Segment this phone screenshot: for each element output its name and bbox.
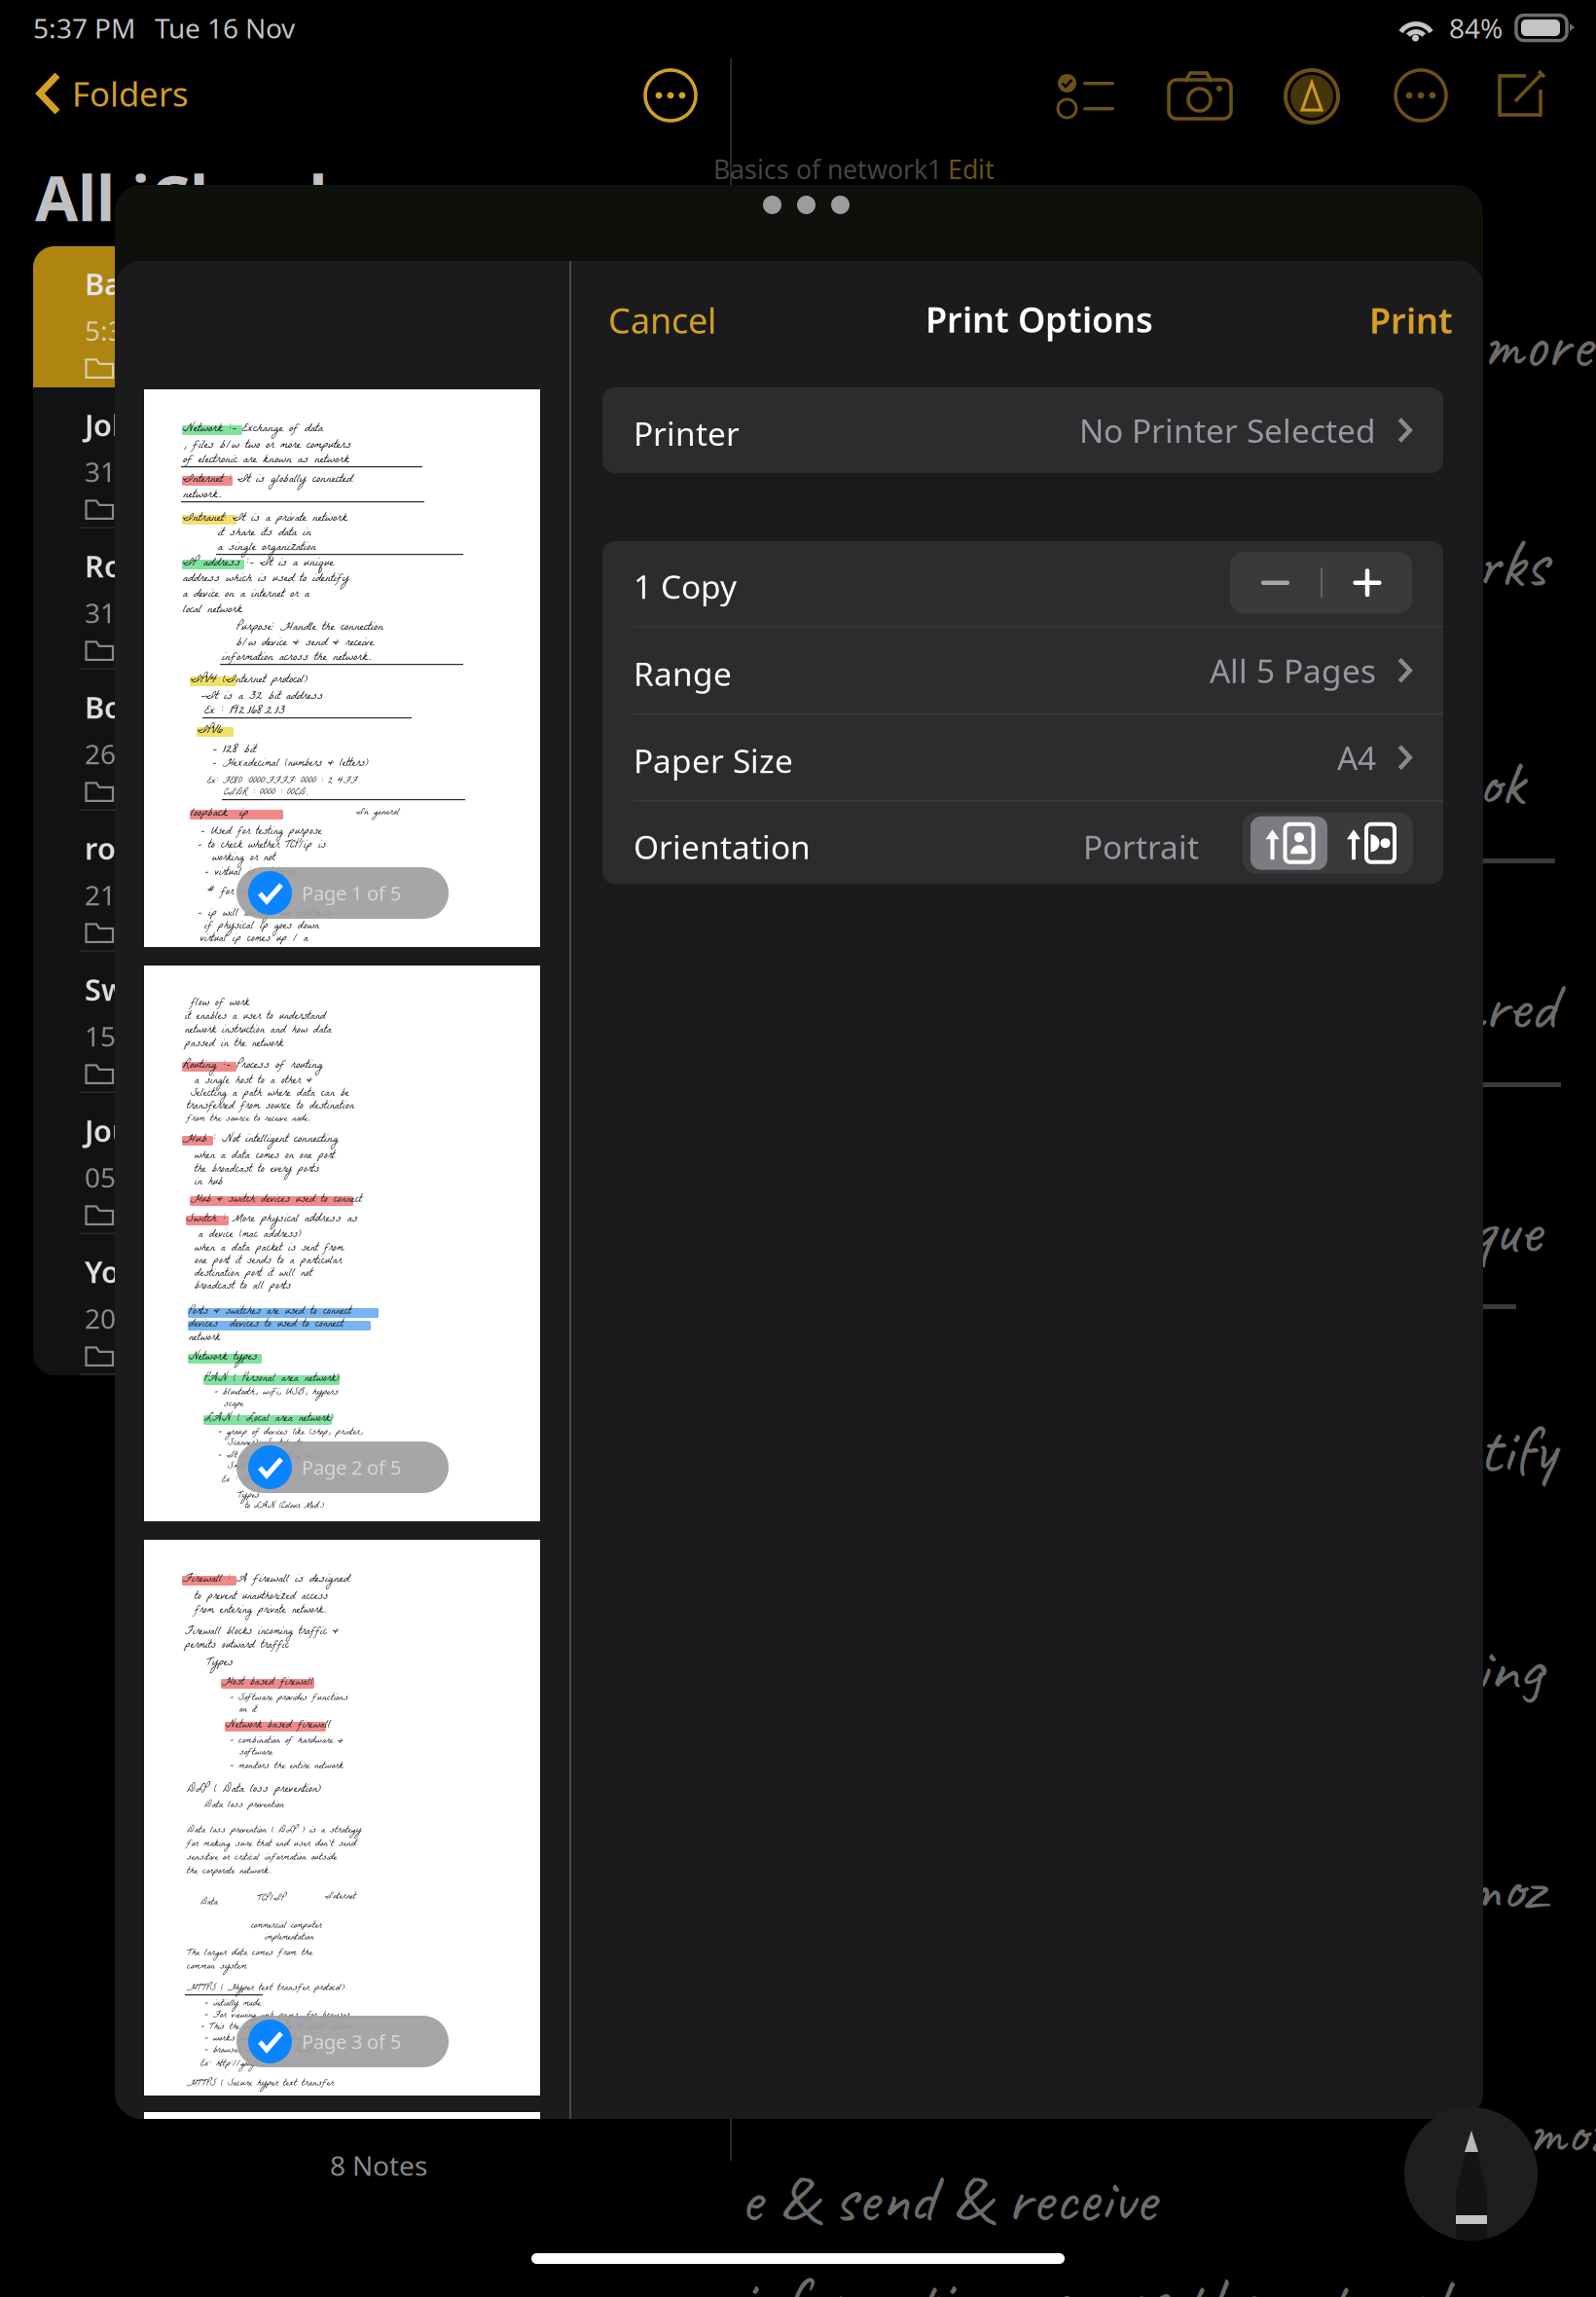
staticText: working or not [200,848,275,868]
staticText: 5:37 PM [33,10,135,46]
staticText: roadmap [85,828,216,868]
staticText: - bluetooth, wifi, USB, hypers [214,1383,339,1402]
staticText: on it [230,1701,257,1720]
staticText: globally connected network & book [749,740,1524,825]
button[interactable]: Landscape orientation [1327,816,1413,870]
staticText: sensitive or critical information outsid… [187,1849,337,1867]
staticText: IP address :- It is a unique [183,552,334,575]
button[interactable]: Decrease number of copies [1230,552,1321,613]
staticText: Ex: http://google.com [200,2056,273,2073]
staticText: Selecting a path where data can be [191,1084,349,1104]
staticText: Tue 16 Nov [155,10,295,46]
button[interactable]: Routine [33,529,675,670]
staticText: IPV4 (Internet protocol) [191,669,308,692]
button[interactable]: Folders [35,71,189,116]
staticText: PAN ( Personal area network) [204,1369,340,1389]
staticText: Print [1369,297,1453,343]
button[interactable]: Paper Size [602,715,1443,800]
staticText: information across the network. [222,647,371,669]
staticText: Job apply [85,405,218,445]
staticText: to moz [1469,2093,1596,2171]
staticText: devices devices to used to connect [189,1315,344,1335]
staticText: information across the network [740,2258,1456,2297]
button[interactable]: More options [1396,70,1446,121]
staticText: 5:37 PM [85,312,187,348]
button[interactable]: Range [602,628,1443,713]
staticText: HTTPS ( Secure hyper text transfer [187,2075,334,2093]
staticText: DLP ( Data loss prevention) [187,1779,321,1801]
staticText: Handle the connection b/w to moz [769,1844,1544,1929]
button[interactable]: Swift [33,952,675,1093]
staticText: - combination of hardware & [230,1732,344,1751]
staticText: 21/10/2021 [85,877,229,913]
staticText: CIDR : 0000 : 00CD. [224,784,308,802]
staticText: - For viewing web pages, for browser [204,2007,350,2024]
staticText: - browser sees details hands. [204,2042,319,2060]
staticText: from the source to receive node. [187,1110,310,1129]
staticText: Types [237,1487,260,1505]
button[interactable]: Journal [33,1093,675,1234]
staticText: flow of work [191,993,249,1014]
staticText: it enables a user to understand [185,1007,326,1027]
staticText: All 5 Pages [1210,649,1376,692]
staticText: A4 [1337,736,1376,779]
staticText: Hub & switch devices used to connect [191,1190,362,1210]
staticText: 26/10/2021 [85,736,229,772]
button[interactable]: Printer [602,387,1443,473]
staticText: a single host to a other & [195,1071,312,1091]
button[interactable]: Cancel [608,297,716,343]
staticText: Hub : Not intelligent connecting [183,1128,339,1151]
button[interactable]: Print [1369,297,1453,343]
staticText: Orientation [634,825,811,868]
staticText: - works on application layer [204,2030,310,2048]
staticText: - group of devices like (shop, printer, [218,1424,363,1441]
button[interactable]: Increase number of copies [1323,552,1412,613]
staticText: a device on a internet or a swing [798,1625,1542,1710]
button[interactable]: Portrait orientation [1251,816,1327,870]
button[interactable]: Edit [948,152,995,186]
staticText: scope [214,1395,243,1414]
staticText: permits outward traffic [185,1636,289,1656]
staticText: 15/10/2021 [85,1018,229,1054]
staticText: Portrait [1083,825,1199,868]
staticText: Internet [325,1888,356,1906]
button[interactable]: roadmap [33,811,675,952]
staticText: Page 1 of 5 [302,880,401,906]
staticText: Data loss prevention ( DLP ) is a strate… [187,1821,361,1840]
button[interactable]: More [645,70,696,121]
staticText: Types [206,1653,234,1674]
button[interactable]: Youtube [33,1234,675,1375]
staticText: address which is used to identify [817,1406,1556,1491]
staticText: common system [187,1958,247,1976]
staticText: 31/10/2021 [85,453,229,489]
staticText: Cancel [608,297,716,343]
staticText: Basics of network1 [713,152,942,186]
staticText: 1 Copy [634,565,737,608]
staticText: IPV6 [198,720,223,742]
button[interactable]: Job apply [33,387,675,529]
staticText: b/w device & send & receive [236,632,374,655]
staticText: implementation [265,1929,313,1947]
staticText: , files b/w two or more computers [183,434,351,457]
button[interactable]: Markup [1284,68,1340,125]
staticText: in a single organization is unique [808,1187,1542,1272]
staticText: the broadcast to every ports [195,1160,319,1180]
staticText: # for loopback ? [207,882,285,903]
button[interactable]: Checklist [1056,70,1116,119]
staticText: Data [200,1894,218,1912]
staticText: Folders [72,71,189,116]
staticText: - monitors the entire network [230,1757,344,1776]
staticText: the corporate network. [187,1862,272,1881]
staticText: Network types [189,1347,258,1369]
staticText: from entering private network. [195,1601,326,1621]
staticText: - Used for testing purpose [200,822,322,842]
button[interactable]: Basics of network1 [33,246,675,387]
button[interactable]: New note [1494,68,1548,123]
staticText: TCP/IP [257,1890,285,1908]
button[interactable]: Insert photo [1168,70,1232,121]
staticText: Data loss prevention [204,1796,284,1815]
button[interactable]: Book list [33,670,675,811]
staticText: commercial computer [251,1917,322,1935]
staticText: Book list [85,687,210,727]
staticText: - ip will always we address [198,904,331,924]
